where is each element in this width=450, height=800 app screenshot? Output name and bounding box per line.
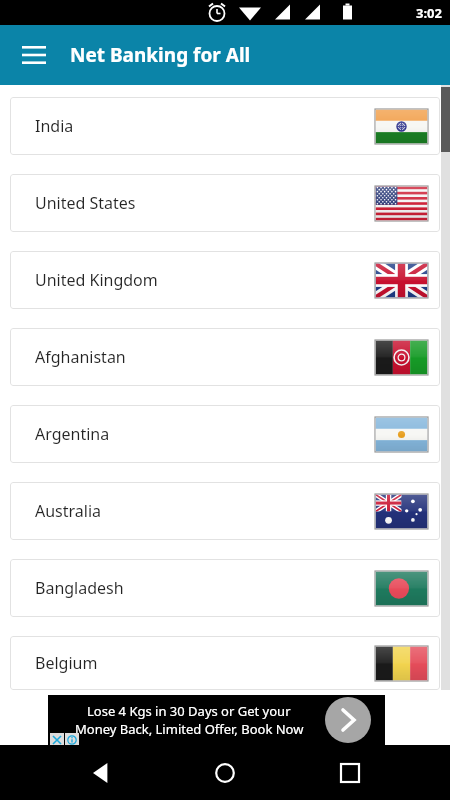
button[interactable]: Home	[201, 749, 249, 797]
button[interactable]: Open navigation drawer	[14, 35, 54, 75]
staticText: Bangladesh	[35, 577, 124, 599]
button[interactable]: Belgium	[10, 636, 440, 690]
button[interactable]: Lose 4 Kgs in 30 Days or Get your	[48, 695, 385, 745]
staticText: 3:02	[416, 4, 442, 22]
button[interactable]: Australia	[10, 482, 440, 540]
button[interactable]: Afghanistan	[10, 328, 440, 386]
staticText: Lose 4 Kgs in 30 Days or Get your	[87, 702, 291, 720]
button[interactable]: United Kingdom	[10, 251, 440, 309]
staticText: Belgium	[35, 652, 98, 674]
staticText: United States	[35, 192, 136, 214]
button[interactable]: Recent apps	[326, 749, 374, 797]
button[interactable]: Back	[77, 749, 125, 797]
staticText: United Kingdom	[35, 269, 158, 291]
staticText: Money Back, Limited Offer, Book Now	[75, 720, 304, 738]
staticText: Afghanistan	[35, 346, 126, 368]
button[interactable]: Ad info	[65, 733, 79, 747]
button[interactable]: United States	[10, 174, 440, 232]
staticText: Australia	[35, 500, 102, 522]
other: Open ad	[325, 697, 371, 743]
staticText: Argentina	[35, 423, 110, 445]
staticText: India	[35, 115, 74, 137]
button[interactable]: India	[10, 97, 440, 155]
button[interactable]: Close ad	[50, 733, 64, 747]
button[interactable]: Argentina	[10, 405, 440, 463]
button[interactable]: Bangladesh	[10, 559, 440, 617]
staticText: Net Banking for All	[70, 42, 251, 68]
